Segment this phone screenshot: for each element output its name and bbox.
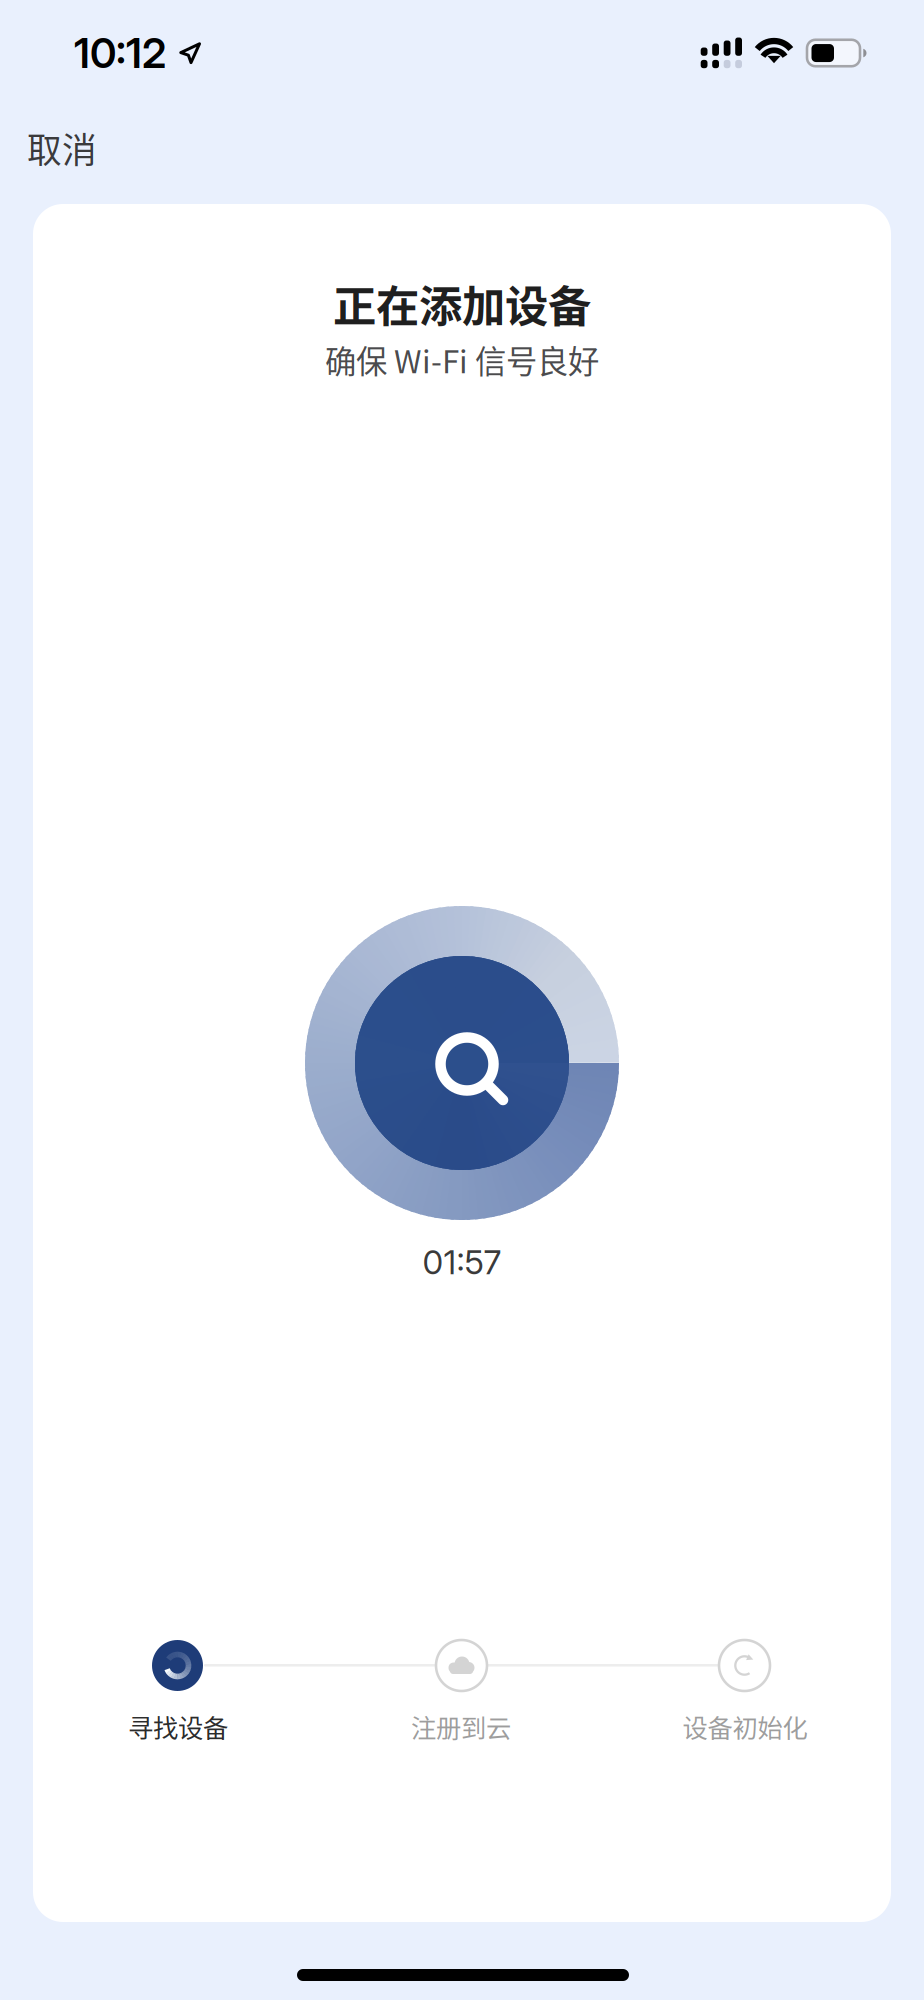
staticText: 10:12	[74, 28, 166, 78]
staticText: 01:57	[422, 1242, 501, 1282]
staticText: 设备初始化	[682, 1708, 807, 1745]
staticText: 注册到云	[411, 1708, 511, 1745]
button[interactable]: 取消	[0, 112, 147, 184]
staticText: 取消	[27, 123, 97, 173]
staticText: 正在添加设备	[333, 272, 591, 335]
staticText: 寻找设备	[128, 1708, 228, 1745]
staticText: 确保 Wi-Fi 信号良好	[325, 337, 599, 382]
